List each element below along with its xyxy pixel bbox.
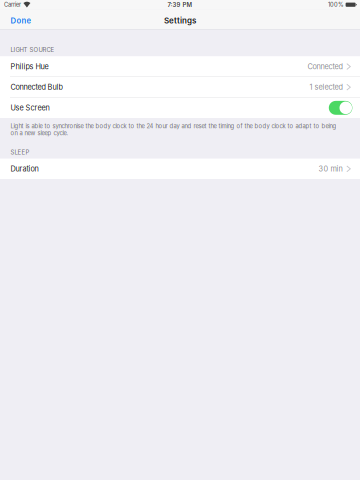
staticText: 30 min — [318, 164, 342, 173]
staticText: Duration — [10, 164, 38, 173]
staticText: LIGHT SOURCE — [10, 46, 54, 53]
staticText: Connected — [307, 62, 342, 71]
staticText: 7:39 PM — [167, 1, 192, 8]
staticText: Light is able to synchronise the body cl… — [10, 122, 336, 137]
button[interactable]: Philips Hue — [0, 56, 360, 77]
staticText: Carrier — [4, 1, 21, 8]
staticText: Connected Bulb — [10, 83, 62, 92]
staticText: Done — [10, 16, 31, 25]
button[interactable]: Connected Bulb — [0, 77, 360, 97]
staticText: Use Screen — [10, 103, 49, 112]
staticText: Philips Hue — [10, 62, 48, 71]
staticText: SLEEP — [10, 149, 29, 156]
button[interactable]: Done — [0, 9, 37, 30]
staticText: 100% — [328, 1, 344, 8]
button[interactable]: Duration — [0, 159, 360, 179]
button[interactable]: Use Screen — [329, 101, 352, 115]
staticText: 1 selected — [309, 83, 342, 92]
staticText: Settings — [164, 16, 196, 25]
